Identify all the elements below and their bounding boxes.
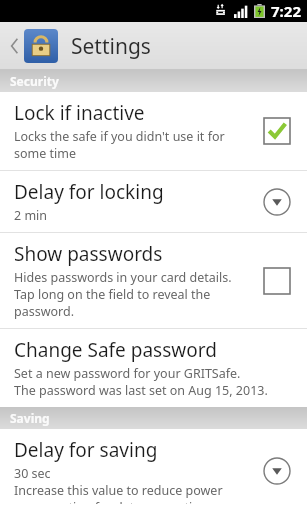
- staticText: Set a new password for your GRITSafe.: [14, 365, 241, 382]
- staticText: consumption for data encryption.: [14, 499, 211, 504]
- button[interactable]: Show passwords: [0, 233, 307, 328]
- button[interactable]: Lock if inactive: [0, 92, 307, 170]
- button[interactable]: Open list: [257, 182, 297, 222]
- button[interactable]: Checked: [257, 111, 297, 151]
- button[interactable]: Open list: [257, 451, 297, 491]
- staticText: Increase this value to reduce power: [14, 482, 223, 499]
- staticText: Delay for locking: [14, 179, 164, 205]
- staticText: password.: [14, 303, 75, 320]
- staticText: 2 min: [14, 207, 48, 224]
- staticText: some time: [14, 145, 77, 162]
- staticText: Show passwords: [14, 241, 163, 267]
- staticText: Saving: [10, 410, 50, 426]
- staticText: Tap long on the field to reveal the: [14, 286, 211, 303]
- button[interactable]: Navigate up: [6, 25, 62, 67]
- staticText: 7:22: [271, 1, 301, 21]
- staticText: Security: [10, 73, 59, 89]
- staticText: Hides passwords in your card details.: [14, 269, 232, 286]
- staticText: Change Safe password: [14, 337, 217, 363]
- button[interactable]: Delay for locking: [0, 171, 307, 232]
- button[interactable]: Unchecked: [257, 261, 297, 301]
- staticText: Locks the safe if you didn't use it for: [14, 128, 225, 145]
- staticText: The password was last set on Aug 15, 201…: [14, 382, 268, 399]
- staticText: Delay for saving: [14, 437, 158, 463]
- staticText: Lock if inactive: [14, 100, 145, 126]
- staticText: 30 sec: [14, 465, 51, 482]
- staticText: Settings: [71, 32, 151, 61]
- button[interactable]: Change Safe password: [0, 329, 307, 407]
- button[interactable]: Delay for saving: [0, 429, 307, 512]
